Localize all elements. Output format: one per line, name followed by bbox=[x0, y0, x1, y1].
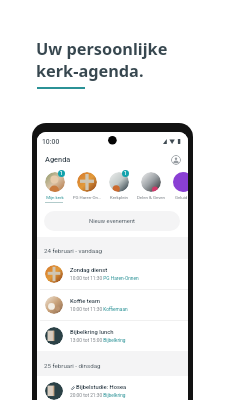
staticText: Agenda bbox=[45, 155, 71, 164]
staticText: 10:00 tot 11:30 Koffiemaan bbox=[70, 307, 128, 313]
button[interactable] bbox=[109, 172, 129, 192]
staticText: Koffie team bbox=[70, 298, 100, 305]
staticText: 24 februari - vandaag bbox=[44, 247, 103, 254]
staticText: Mijn kerk bbox=[39, 195, 71, 200]
staticText: 10:00 bbox=[42, 138, 60, 146]
staticText: 1 bbox=[60, 171, 63, 176]
staticText: Bijbelstudie: Hosea bbox=[76, 384, 127, 391]
staticText: PG Haren-On... bbox=[71, 195, 103, 200]
staticText: 10:00 tot 11:30 PG Haren-Onnen bbox=[70, 276, 139, 282]
button[interactable] bbox=[77, 172, 97, 192]
button[interactable]: Zondag dienst bbox=[37, 259, 188, 289]
staticText: 20:00 tot 21:30 Bijbelkring bbox=[70, 393, 126, 399]
button[interactable] bbox=[141, 172, 161, 192]
staticText: Nieuw evenement bbox=[89, 218, 136, 225]
staticText: Geluid & bbox=[167, 195, 188, 200]
staticText: Uw persoonlijke bbox=[36, 38, 168, 60]
staticText: Kerkplein bbox=[103, 195, 135, 200]
staticText: 13:00 tot 15:00 Bijbelkring bbox=[70, 338, 126, 344]
button[interactable] bbox=[173, 172, 188, 192]
button[interactable]: Koffie team bbox=[37, 290, 188, 320]
staticText: 25 februari - dinsdag bbox=[44, 362, 101, 369]
button[interactable]: Bijbelkring lunch bbox=[37, 321, 188, 351]
button[interactable]: Bijbelstudie: Hosea bbox=[37, 376, 188, 400]
staticText: Bijbelkring lunch bbox=[70, 329, 114, 336]
button[interactable] bbox=[45, 172, 65, 192]
button[interactable]: Account bbox=[171, 155, 181, 165]
staticText: Delen & Geven bbox=[135, 195, 167, 200]
staticText: Zondag dienst bbox=[70, 267, 108, 274]
staticText: 1 bbox=[124, 171, 127, 176]
staticText: kerk-agenda. bbox=[36, 60, 144, 82]
button[interactable]: Nieuw evenement bbox=[44, 211, 180, 231]
